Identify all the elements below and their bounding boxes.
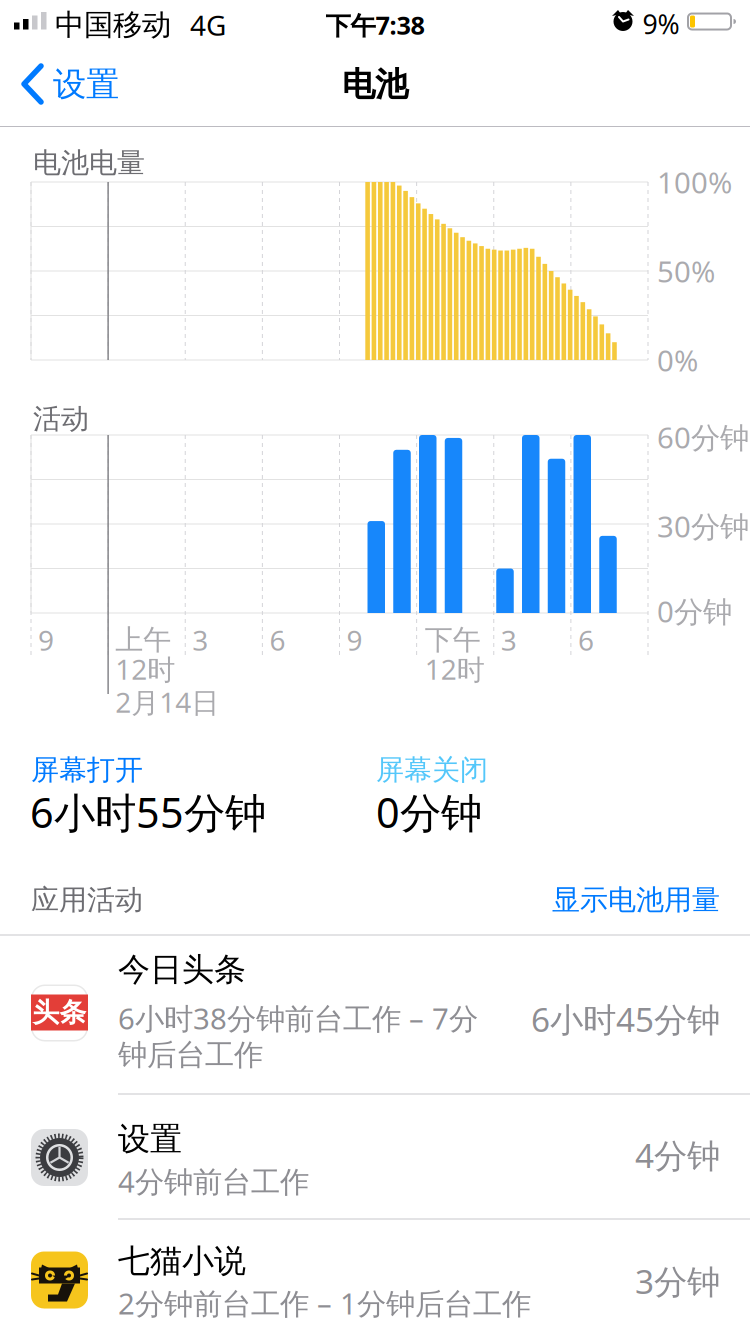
staticText: 9: [38, 621, 54, 659]
staticText: 0分钟: [376, 785, 482, 839]
staticText: 电池: [342, 64, 408, 105]
staticText: 6: [578, 621, 594, 659]
staticText: 下午7:38: [325, 8, 424, 42]
staticText: 中国移动: [55, 7, 171, 43]
staticText: 30分钟: [657, 506, 749, 545]
staticText: 4G: [190, 6, 226, 44]
staticText: 设置: [118, 1119, 182, 1159]
staticText: 100%: [657, 162, 732, 201]
staticText: 9%: [642, 6, 679, 42]
staticText: 2月14日: [115, 683, 219, 721]
staticText: 3: [501, 621, 517, 659]
staticText: 3分钟: [635, 1259, 720, 1303]
staticText: 屏幕打开: [31, 753, 143, 787]
staticText: 9: [346, 621, 362, 659]
staticText: 设置: [53, 64, 119, 105]
staticText: 6小时45分钟: [531, 997, 720, 1041]
staticText: 60分钟: [657, 417, 749, 456]
staticText: 七猫小说: [118, 1241, 246, 1281]
staticText: 头条: [32, 996, 86, 1029]
staticText: 6: [269, 621, 285, 659]
staticText: 12时: [425, 650, 485, 688]
button[interactable]: 返回设置: [21, 64, 119, 105]
staticText: 屏幕关闭: [376, 753, 488, 787]
staticText: 下午: [425, 623, 481, 657]
staticText: 应用活动: [31, 883, 143, 917]
staticText: 2分钟前台工作 – 1分钟后台工作: [118, 1283, 531, 1322]
button[interactable]: 头条: [0, 936, 750, 1093]
staticText: 电池电量: [33, 146, 145, 180]
staticText: 4分钟: [635, 1133, 720, 1177]
staticText: 6小时55分钟: [30, 785, 266, 839]
staticText: 0%: [657, 340, 698, 379]
staticText: 4分钟前台工作: [118, 1161, 309, 1200]
staticText: 6小时38分钟前台工作 – 7分: [118, 998, 478, 1037]
button[interactable]: 设置: [0, 1095, 750, 1218]
staticText: 上午: [115, 623, 171, 657]
staticText: 显示电池用量: [552, 883, 720, 917]
staticText: 12时: [115, 650, 175, 688]
staticText: 3: [192, 621, 208, 659]
staticText: 活动: [33, 402, 89, 436]
staticText: 50%: [657, 251, 715, 290]
staticText: 今日头条: [118, 950, 246, 989]
staticText: 0分钟: [657, 591, 732, 630]
button[interactable]: 显示电池用量: [552, 883, 720, 917]
staticText: 钟后台工作: [118, 1037, 263, 1073]
button[interactable]: 七猫小说: [0, 1219, 750, 1334]
